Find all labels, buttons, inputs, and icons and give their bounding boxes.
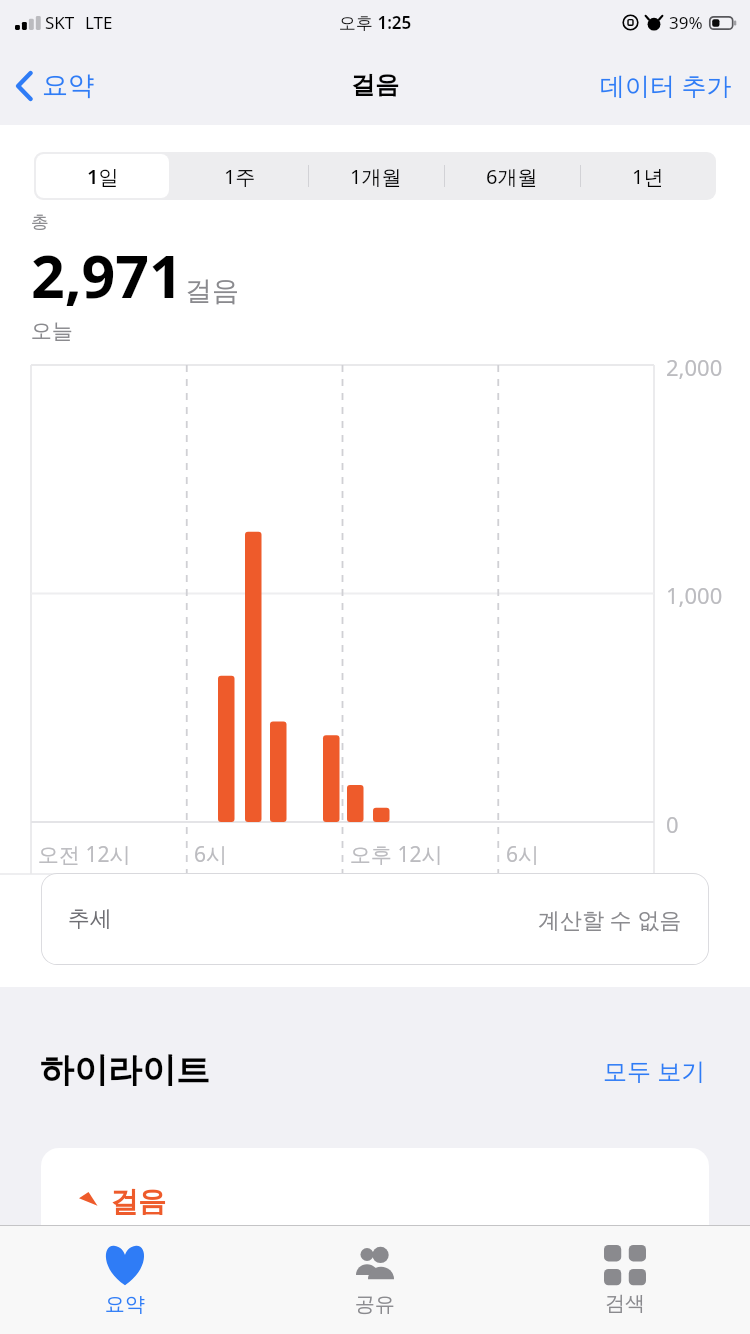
staticText: 1주 [224, 163, 256, 190]
staticText: 걸음 [185, 274, 239, 308]
staticText: 검색 [605, 1291, 645, 1316]
staticText: 6개월 [486, 163, 538, 190]
button[interactable]: 요약 [8, 61, 102, 110]
staticText: 요약 [105, 1292, 145, 1317]
staticText: 오후 12시 [350, 840, 443, 869]
staticText: 1,000 [666, 580, 723, 610]
button[interactable]: 데이터 추가 [594, 60, 738, 110]
staticText: 걸음 [110, 1184, 166, 1219]
staticText: 1개월 [350, 163, 402, 190]
staticText: 0 [666, 809, 679, 839]
staticText: 추세 [68, 905, 112, 933]
staticText: 오후 1:25 [339, 11, 412, 34]
staticText: 오늘 [31, 318, 73, 344]
staticText: 총 [31, 211, 49, 234]
staticText: 1년 [632, 163, 664, 190]
button[interactable]: 걸음 [41, 1148, 709, 1237]
staticText: 39% [669, 11, 703, 34]
staticText: 계산할 수 없음 [538, 904, 682, 934]
staticText: 하이라이트 [40, 1049, 210, 1092]
button[interactable]: 1주 [171, 152, 308, 200]
button[interactable]: 요약 [0, 1226, 250, 1334]
staticText: SKT [45, 11, 75, 34]
staticText: 요약 [42, 69, 94, 102]
staticText: 2,000 [666, 352, 723, 382]
button[interactable]: 모두 보기 [599, 1050, 710, 1091]
staticText: 걸음 [351, 70, 399, 100]
button[interactable]: 검색 [500, 1226, 750, 1334]
staticText: LTE [85, 11, 113, 34]
staticText: 2,971 [31, 235, 183, 315]
button[interactable]: 공유 [250, 1226, 500, 1334]
staticText: 1일 [87, 163, 119, 190]
staticText: 6시 [194, 840, 228, 869]
staticText: 오전 12시 [38, 840, 131, 869]
button[interactable]: 6개월 [444, 152, 580, 200]
button[interactable]: 추세 [41, 873, 709, 965]
staticText: 공유 [355, 1292, 395, 1317]
staticText: 6시 [506, 840, 540, 869]
button[interactable]: 1개월 [308, 152, 444, 200]
staticText: 데이터 추가 [600, 68, 732, 102]
button[interactable]: 1일 [34, 152, 171, 200]
staticText: 모두 보기 [603, 1054, 706, 1087]
button[interactable]: 1년 [580, 152, 716, 200]
